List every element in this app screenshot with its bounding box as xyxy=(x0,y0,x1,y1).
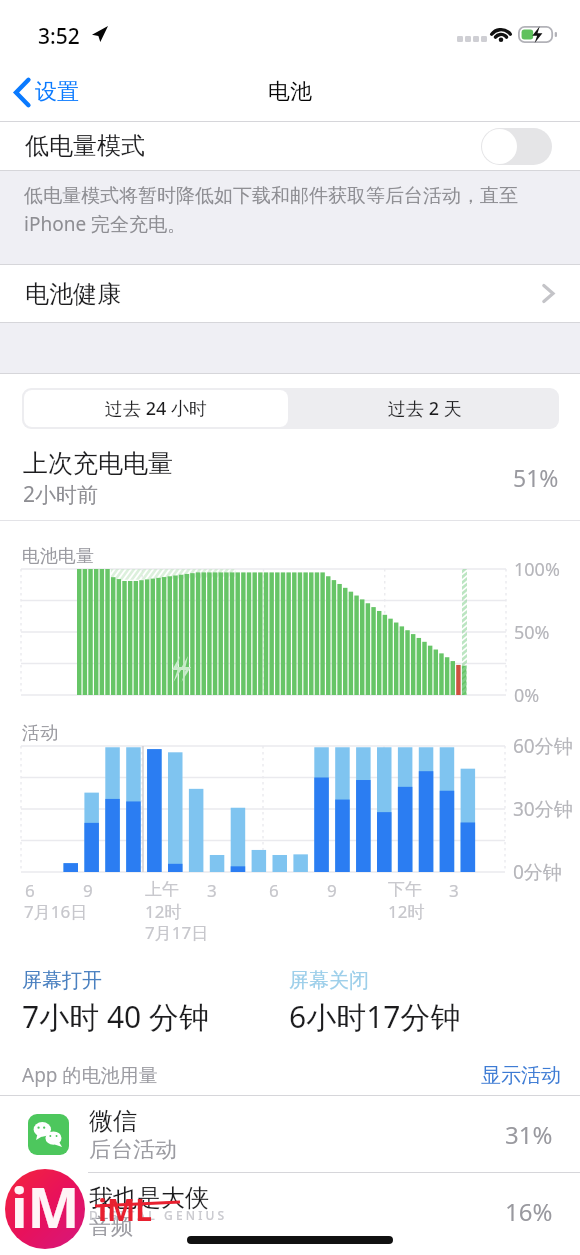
staticText: 100% xyxy=(514,557,560,582)
staticText: 我也是大侠 xyxy=(89,1183,209,1213)
staticText: 上午 xyxy=(145,879,179,900)
staticText: 7月17日 xyxy=(145,921,209,944)
staticText: 电池 xyxy=(268,78,312,106)
staticText: 电池电量 xyxy=(22,545,94,568)
staticText: 微信 xyxy=(89,1106,137,1136)
staticText: 51% xyxy=(513,462,559,493)
staticText: 过去 24 小时 xyxy=(105,396,207,421)
staticText: 设置 xyxy=(35,78,79,106)
staticText: 3 xyxy=(449,879,459,902)
button[interactable]: 过去 2 天 xyxy=(290,388,559,429)
staticText: 60分钟 xyxy=(513,733,573,759)
staticText: 屏幕打开 xyxy=(22,968,102,993)
button[interactable]: 微信 xyxy=(0,1096,580,1173)
staticText: 3:52 xyxy=(38,22,80,51)
staticText: 12时 xyxy=(145,900,182,923)
button[interactable]: 低电量模式 xyxy=(0,122,580,170)
staticText: 0分钟 xyxy=(513,859,562,885)
staticText: 6小时17分钟 xyxy=(289,996,461,1037)
staticText: 30分钟 xyxy=(513,796,573,822)
staticText: 上次充电电量 xyxy=(23,448,173,479)
staticText: App 的电池用量 xyxy=(22,1062,158,1088)
staticText: iML xyxy=(98,1189,153,1230)
staticText: 3 xyxy=(207,879,217,902)
staticText: 9 xyxy=(83,879,93,902)
staticText: 6 xyxy=(269,879,279,902)
staticText: 2小时前 xyxy=(23,480,99,509)
staticText: 9 xyxy=(327,879,337,902)
staticText: 下午 xyxy=(388,879,422,900)
staticText: 0% xyxy=(514,683,540,708)
button[interactable]: 过去 24 小时 xyxy=(24,390,288,427)
staticText: 过去 2 天 xyxy=(388,396,462,421)
button[interactable]: 设置 xyxy=(14,62,85,122)
staticText: 12时 xyxy=(388,900,425,923)
staticText: iM xyxy=(11,1169,80,1244)
staticText: 7月16日 xyxy=(24,900,88,923)
button[interactable]: 低电量模式开关 xyxy=(481,128,552,165)
staticText: 显示活动 xyxy=(481,1063,561,1088)
button[interactable]: 显示活动 xyxy=(481,1063,580,1088)
staticText: 低电量模式将暂时降低如下载和邮件获取等后台活动，直至 xyxy=(24,184,518,208)
staticText: 屏幕关闭 xyxy=(289,968,369,993)
staticText: iPhone 完全充电。 xyxy=(24,211,187,237)
staticText: 活动 xyxy=(22,722,58,745)
staticText: 后台活动 xyxy=(89,1136,177,1164)
staticText: 6 xyxy=(25,879,35,902)
staticText: 31% xyxy=(505,1118,553,1151)
staticText: 16% xyxy=(505,1195,553,1228)
button[interactable]: 电池健康 xyxy=(0,265,580,322)
button[interactable]: 我也是大侠 xyxy=(0,1173,580,1250)
staticText: D I G I T A L G E N I U S xyxy=(89,1207,225,1223)
staticText: 50% xyxy=(514,620,550,645)
staticText: 电池健康 xyxy=(25,279,121,309)
staticText: 音频 xyxy=(89,1213,133,1241)
staticText: 低电量模式 xyxy=(25,131,145,161)
staticText: 7小时 40 分钟 xyxy=(22,996,210,1037)
